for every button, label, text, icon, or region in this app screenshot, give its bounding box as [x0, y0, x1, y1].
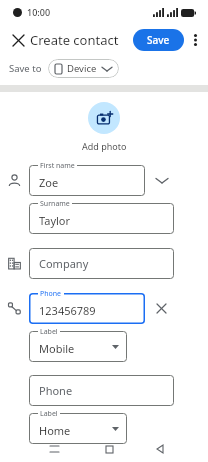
button[interactable]: More options	[185, 30, 205, 50]
button[interactable]: First name	[29, 165, 145, 196]
staticText: Label	[40, 327, 58, 337]
staticText: Phone	[39, 383, 73, 398]
button[interactable]: Surname	[29, 203, 174, 234]
button[interactable]: Close	[6, 28, 30, 52]
staticText: Phone	[40, 289, 62, 299]
staticText: First name	[40, 161, 75, 171]
button[interactable]: Recents	[46, 441, 62, 457]
button[interactable]: Label	[29, 413, 127, 444]
staticText: Mobile	[39, 341, 75, 356]
button[interactable]: Company	[29, 248, 174, 279]
staticText: Home	[39, 423, 71, 438]
button[interactable]: Add photo	[88, 102, 120, 134]
button[interactable]: Device	[48, 59, 119, 78]
staticText: 10:00	[27, 6, 51, 18]
button[interactable]: Home	[101, 441, 117, 457]
staticText: Device	[67, 62, 97, 75]
staticText: Zoe	[39, 175, 59, 190]
staticText: Label	[40, 409, 58, 419]
staticText: Create contact	[30, 31, 119, 49]
button[interactable]: Save	[133, 29, 184, 51]
button[interactable]: Expand name fields	[154, 172, 170, 188]
button[interactable]: Phone	[29, 375, 174, 406]
button[interactable]: Back	[152, 441, 168, 457]
staticText: Save to	[9, 62, 42, 75]
staticText: Company	[39, 256, 89, 271]
staticText: Save	[147, 33, 170, 47]
staticText: Add photo	[82, 140, 127, 152]
button[interactable]: Label	[29, 331, 127, 362]
button[interactable]: Clear phone	[152, 299, 170, 317]
button[interactable]: Phone	[29, 293, 145, 324]
staticText: Surname	[40, 199, 70, 209]
staticText: Taylor	[39, 213, 71, 228]
staticText: 123456789	[39, 303, 96, 318]
